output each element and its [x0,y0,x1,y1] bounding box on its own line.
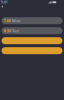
staticText: 7:00 [3,18,10,23]
button[interactable]: 8:30 [1,27,62,34]
button[interactable]: Back [0,4,5,9]
button[interactable] [1,37,62,44]
button[interactable] [1,47,62,54]
staticText: Mon [12,18,21,23]
staticText: Tue [12,28,19,33]
staticText: 9:41 [0,0,7,5]
staticText: 8:30 [3,28,10,33]
button[interactable]: 7:00 [1,17,62,24]
